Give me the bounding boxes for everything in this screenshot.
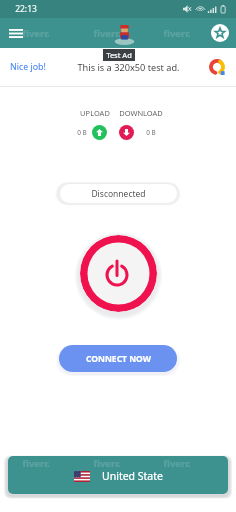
staticText: This is a 320x50 test ad. [77,61,180,74]
staticText: fiverr. [22,27,50,40]
button[interactable]: Premium [211,24,229,42]
staticText: fiverr. [22,457,50,470]
staticText: CONNECT NOW [86,353,151,365]
staticText: fiverr. [93,457,121,470]
staticText: fiverr. [163,27,191,40]
button[interactable]: Menu [3,21,29,45]
staticText: Test Ad [106,50,132,60]
staticText: DOWNLOAD [119,108,163,118]
staticText: 22:13 [15,3,37,15]
button[interactable]: Disconnected [60,184,177,203]
button[interactable]: Power [80,235,157,312]
staticText: fiverr. [93,27,121,40]
staticText: United State [102,469,163,483]
staticText: UPLOAD [80,108,110,118]
staticText: 0 B [146,128,156,137]
staticText: Nice job! [10,61,46,73]
staticText: 0 B [77,128,87,137]
staticText: fiverr. [163,457,191,470]
button[interactable]: fiverr. [8,456,228,494]
button[interactable]: CONNECT NOW [59,345,177,372]
staticText: Disconnected [91,188,146,200]
